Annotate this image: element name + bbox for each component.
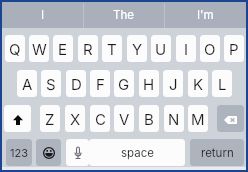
button[interactable]: L [212, 70, 232, 97]
staticText: V [119, 110, 130, 128]
staticText: space [121, 146, 154, 160]
button[interactable]: return [190, 139, 244, 166]
staticText: P [229, 40, 239, 58]
staticText: H [143, 75, 155, 93]
staticText: Y [132, 40, 143, 58]
button[interactable]: Dictate [66, 139, 89, 166]
staticText: X [70, 110, 81, 128]
button[interactable]: Z [40, 105, 60, 132]
staticText: N [168, 110, 180, 128]
staticText: G [118, 75, 130, 93]
button[interactable]: R [78, 35, 98, 62]
staticText: S [46, 75, 56, 93]
button[interactable]: Emoji [36, 139, 61, 166]
button[interactable]: N [164, 105, 184, 132]
button[interactable]: F [90, 70, 110, 97]
button[interactable]: U [151, 35, 171, 62]
button[interactable]: 123 [6, 139, 32, 166]
button[interactable]: A [17, 70, 37, 97]
button[interactable]: M [188, 105, 208, 132]
button[interactable]: E [53, 35, 73, 62]
staticText: Z [45, 110, 55, 128]
staticText: The [113, 8, 134, 22]
staticText: return [201, 146, 234, 160]
button[interactable]: Delete [217, 105, 244, 132]
staticText: D [71, 75, 82, 93]
staticText: E [58, 40, 68, 58]
button[interactable]: C [90, 105, 110, 132]
button[interactable]: X [65, 105, 85, 132]
button[interactable]: P [224, 35, 244, 62]
button[interactable]: H [139, 70, 159, 97]
button[interactable]: S [41, 70, 61, 97]
staticText: I'm [197, 8, 214, 22]
staticText: B [144, 110, 154, 128]
button[interactable]: B [139, 105, 159, 132]
staticText: T [107, 40, 117, 58]
staticText: O [204, 40, 216, 58]
button[interactable]: V [114, 105, 134, 132]
button[interactable]: G [114, 70, 134, 97]
button[interactable]: The [83, 2, 164, 28]
button[interactable]: D [66, 70, 86, 97]
staticText: C [95, 110, 106, 128]
button[interactable]: O [200, 35, 220, 62]
button[interactable]: T [102, 35, 122, 62]
staticText: J [169, 75, 178, 93]
button[interactable]: W [29, 35, 49, 62]
button[interactable]: K [188, 70, 208, 97]
button[interactable]: I [2, 2, 83, 28]
button[interactable]: I [176, 35, 196, 62]
staticText: W [32, 40, 47, 58]
staticText: K [193, 75, 204, 93]
staticText: A [22, 75, 33, 93]
button[interactable]: I'm [165, 2, 246, 28]
staticText: M [191, 110, 205, 128]
staticText: I [184, 40, 189, 58]
button[interactable]: Shift [4, 105, 31, 132]
button[interactable]: space [89, 139, 185, 166]
staticText: 123 [10, 146, 28, 159]
staticText: L [218, 75, 227, 93]
staticText: I [41, 8, 45, 22]
staticText: U [155, 40, 167, 58]
button[interactable]: Y [127, 35, 147, 62]
button[interactable]: J [163, 70, 183, 97]
staticText: F [96, 75, 105, 93]
staticText: R [83, 40, 93, 58]
staticText: Q [9, 40, 21, 58]
button[interactable]: Q [5, 35, 25, 62]
